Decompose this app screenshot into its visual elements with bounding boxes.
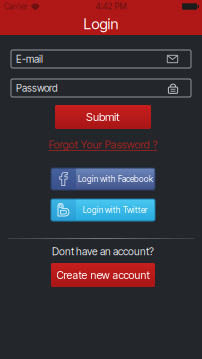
staticText: E-mail bbox=[16, 53, 43, 65]
staticText: Carrier bbox=[4, 2, 28, 11]
staticText: Password bbox=[16, 82, 58, 94]
staticText: Login with Twitter bbox=[83, 205, 148, 215]
staticText: Submit bbox=[86, 110, 120, 124]
staticText: Login with Facebook bbox=[78, 174, 153, 184]
staticText: 4:42 PM bbox=[95, 1, 126, 11]
button[interactable]: Submit bbox=[55, 105, 151, 129]
staticText: Create new account bbox=[56, 268, 149, 281]
button[interactable]: Forgot Your Password ? bbox=[48, 138, 157, 151]
button[interactable]: Login with Facebook bbox=[51, 168, 155, 190]
staticText: Dont have an account? bbox=[52, 245, 154, 258]
button[interactable]: Login with Twitter bbox=[51, 199, 155, 221]
button[interactable]: Create new account bbox=[51, 263, 155, 287]
staticText: Forgot Your Password ? bbox=[48, 138, 157, 151]
staticText: Login bbox=[83, 15, 118, 33]
